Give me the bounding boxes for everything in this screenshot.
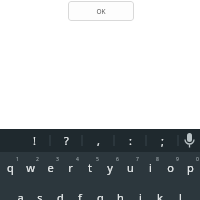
button[interactable]: d (50, 183, 70, 200)
button[interactable]: h (110, 183, 130, 200)
button[interactable]: 1 (0, 152, 20, 180)
staticText: t (88, 160, 92, 175)
button[interactable]: ; (146, 129, 178, 152)
staticText: : (129, 133, 132, 148)
staticText: q (7, 160, 14, 175)
staticText: 9 (176, 156, 179, 163)
button[interactable]: 4 (60, 152, 80, 180)
button[interactable]: OK (68, 1, 134, 21)
staticText: o (167, 160, 174, 175)
staticText: w (26, 160, 35, 175)
staticText: l (179, 190, 182, 200)
staticText: 1 (16, 156, 19, 163)
staticText: d (57, 190, 64, 200)
button[interactable]: l (170, 183, 190, 200)
staticText: OK (96, 7, 106, 16)
staticText: 4 (76, 156, 79, 163)
staticText: a (17, 190, 24, 200)
button[interactable]: 5 (80, 152, 100, 180)
button[interactable]: 0 (180, 152, 200, 180)
button[interactable]: 9 (160, 152, 180, 180)
staticText: e (47, 160, 54, 175)
button[interactable]: 3 (40, 152, 60, 180)
staticText: 7 (136, 156, 139, 163)
staticText: 2 (36, 156, 39, 163)
staticText: ! (33, 133, 36, 148)
staticText: g (97, 190, 104, 200)
staticText: 0 (196, 156, 199, 163)
staticText: i (149, 160, 152, 175)
button[interactable]: s (30, 183, 50, 200)
staticText: , (97, 133, 100, 148)
staticText: j (139, 190, 142, 200)
staticText: h (117, 190, 124, 200)
staticText: r (68, 160, 73, 175)
button[interactable]: 2 (20, 152, 40, 180)
staticText: s (37, 190, 43, 200)
button[interactable] (178, 129, 200, 152)
staticText: y (107, 160, 113, 175)
button[interactable]: ? (50, 129, 82, 152)
button[interactable]: 8 (140, 152, 160, 180)
button[interactable]: j (130, 183, 150, 200)
button[interactable]: 7 (120, 152, 140, 180)
staticText: 6 (116, 156, 119, 163)
button[interactable]: g (90, 183, 110, 200)
button[interactable]: 6 (100, 152, 120, 180)
staticText: f (78, 190, 82, 200)
staticText: ; (161, 133, 164, 148)
button[interactable]: , (82, 129, 114, 152)
staticText: p (187, 160, 194, 175)
button[interactable]: k (150, 183, 170, 200)
staticText: 8 (156, 156, 159, 163)
staticText: 3 (56, 156, 59, 163)
button[interactable]: : (114, 129, 146, 152)
button[interactable]: ! (18, 129, 50, 152)
button[interactable]: f (70, 183, 90, 200)
staticText: u (127, 160, 134, 175)
staticText: k (157, 190, 163, 200)
staticText: 5 (96, 156, 99, 163)
button[interactable]: a (10, 183, 30, 200)
staticText: ? (64, 133, 69, 148)
